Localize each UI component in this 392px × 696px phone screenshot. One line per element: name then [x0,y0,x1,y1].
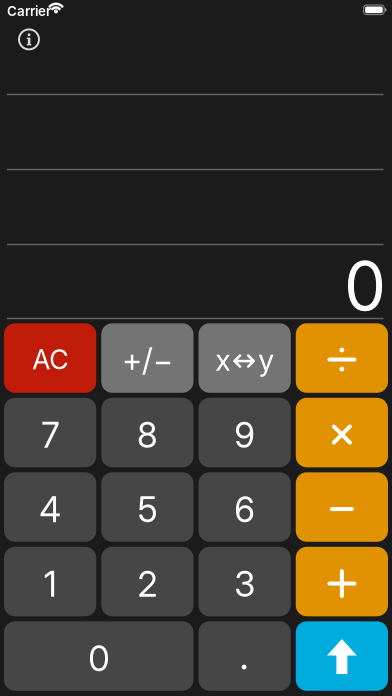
button[interactable]: Subtract [296,472,388,542]
staticText: 5 [137,489,157,530]
staticText: 4 [39,489,61,530]
button[interactable]: 2 [101,547,193,616]
staticText: y [258,342,274,378]
staticText: 6 [234,489,255,530]
button[interactable]: 7 [4,398,96,467]
staticText: 1 [44,563,57,605]
button[interactable]: 4 [4,472,96,542]
staticText: Carrier [7,3,51,19]
button[interactable]: Divide [296,323,388,393]
button[interactable]: 1 [4,547,96,616]
button[interactable]: 0 [4,621,193,691]
staticText: 0 [344,246,386,326]
button[interactable]: 5 [101,472,193,542]
button[interactable]: Enter [296,621,388,691]
button[interactable]: +/− [101,323,193,393]
staticText: 7 [41,414,59,456]
button[interactable]: Decimal point [198,621,291,691]
staticText: 3 [234,563,255,605]
button[interactable]: Add [296,547,388,616]
button[interactable]: AC [4,323,96,393]
staticText: 8 [137,414,158,456]
button[interactable]: 6 [198,472,291,542]
staticText: 0 [88,638,109,679]
button[interactable]: Info [18,28,40,50]
button[interactable]: 3 [198,547,291,616]
button[interactable]: 9 [198,398,291,467]
staticText: AC [32,343,68,376]
staticText: 2 [137,563,157,605]
button[interactable]: Multiply [296,398,388,467]
staticText: +/− [122,341,173,379]
button[interactable]: 8 [101,398,193,467]
staticText: 9 [234,414,255,456]
button[interactable]: Swap x and y [198,323,291,393]
staticText: x [215,342,230,378]
